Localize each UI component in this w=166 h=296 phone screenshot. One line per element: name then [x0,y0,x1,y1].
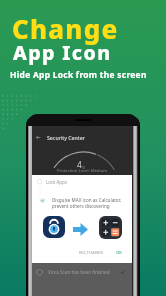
staticText: OK [116,250,123,255]
button[interactable]: Back [32,129,132,145]
staticText: Change [12,11,119,46]
staticText: Protection Level: Medium [57,168,108,173]
other: Back [34,134,41,141]
staticText: /5 [82,165,86,170]
staticText: Disguise MAX icon as Calculator, [52,197,122,203]
staticText: Hide App Lock from the screen [10,69,147,80]
staticText: App Icon [13,39,112,66]
button[interactable]: NO,THANKS [77,248,106,257]
staticText: NO,THANKS [79,250,104,255]
staticText: 4 [77,159,82,170]
button[interactable]: Lock Apps [32,177,132,186]
staticText: Lock Apps [46,179,67,185]
button[interactable]: Virus Scan has been finished [32,265,132,279]
staticText: prevent others discovering [52,203,110,209]
staticText: Security Center [47,134,85,141]
button[interactable]: OK [114,248,125,257]
button[interactable]: Disguise MAX icon as Calculator, [52,197,122,209]
staticText: Virus Scan has been finished [48,269,110,275]
other: becomes Calculator [73,223,88,236]
